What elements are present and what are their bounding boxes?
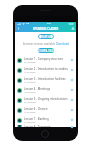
staticText: Lesson 4 - Meetings	[24, 87, 51, 91]
staticText: 12 activities	[24, 101, 36, 104]
button[interactable]: Lesson 8 - Transport	[15, 125, 76, 127]
staticText: Lesson 7 - Banking	[24, 117, 49, 121]
staticText: Lesson 8 - Transport	[24, 125, 51, 127]
staticText: Download	[56, 42, 69, 46]
button[interactable]: DOWNLOAD	[38, 48, 54, 53]
staticText: 12 activities	[24, 81, 36, 84]
button[interactable]: Lesson 3 - Introduction facilities	[15, 75, 76, 85]
button[interactable]: Lesson 6 - Chance	[15, 105, 76, 115]
button[interactable]: UPDATE	[38, 34, 54, 39]
staticText: 9:41	[47, 22, 51, 25]
staticText: UPDATE	[41, 35, 52, 39]
staticText: A newer version available	[23, 42, 56, 46]
staticText: 12 activities	[24, 121, 36, 124]
button[interactable]: Lesson 5 - Ongoing introductions	[15, 95, 76, 105]
button[interactable]: Back	[15, 25, 22, 32]
button[interactable]: Account	[69, 25, 76, 32]
button[interactable]: Lesson 2 - Introduction to studies	[15, 65, 76, 75]
staticText: 12 activities	[24, 111, 36, 114]
staticText: DOWNLOAD	[38, 49, 54, 53]
staticText: SPEAKING CLASSES	[33, 27, 59, 31]
staticText: Lesson 1 - Company structure	[24, 57, 64, 61]
button[interactable]: Lesson 1 - Company structure	[15, 55, 76, 65]
staticText: LTE	[26, 22, 30, 25]
staticText: Lesson 6 - Chance	[24, 107, 48, 111]
staticText: 12 activities	[24, 91, 36, 94]
button[interactable]: Lesson 4 - Meetings	[15, 85, 76, 95]
staticText: Lesson 2 - Introduction to studies	[24, 67, 68, 71]
staticText: 12 activities	[24, 71, 36, 74]
staticText: Lesson 3 - Introduction facilities	[24, 77, 66, 81]
button[interactable]: Lesson 7 - Banking	[15, 115, 76, 125]
staticText: 12 activities	[24, 61, 36, 64]
staticText: Lesson 5 - Ongoing introductions	[24, 97, 68, 101]
